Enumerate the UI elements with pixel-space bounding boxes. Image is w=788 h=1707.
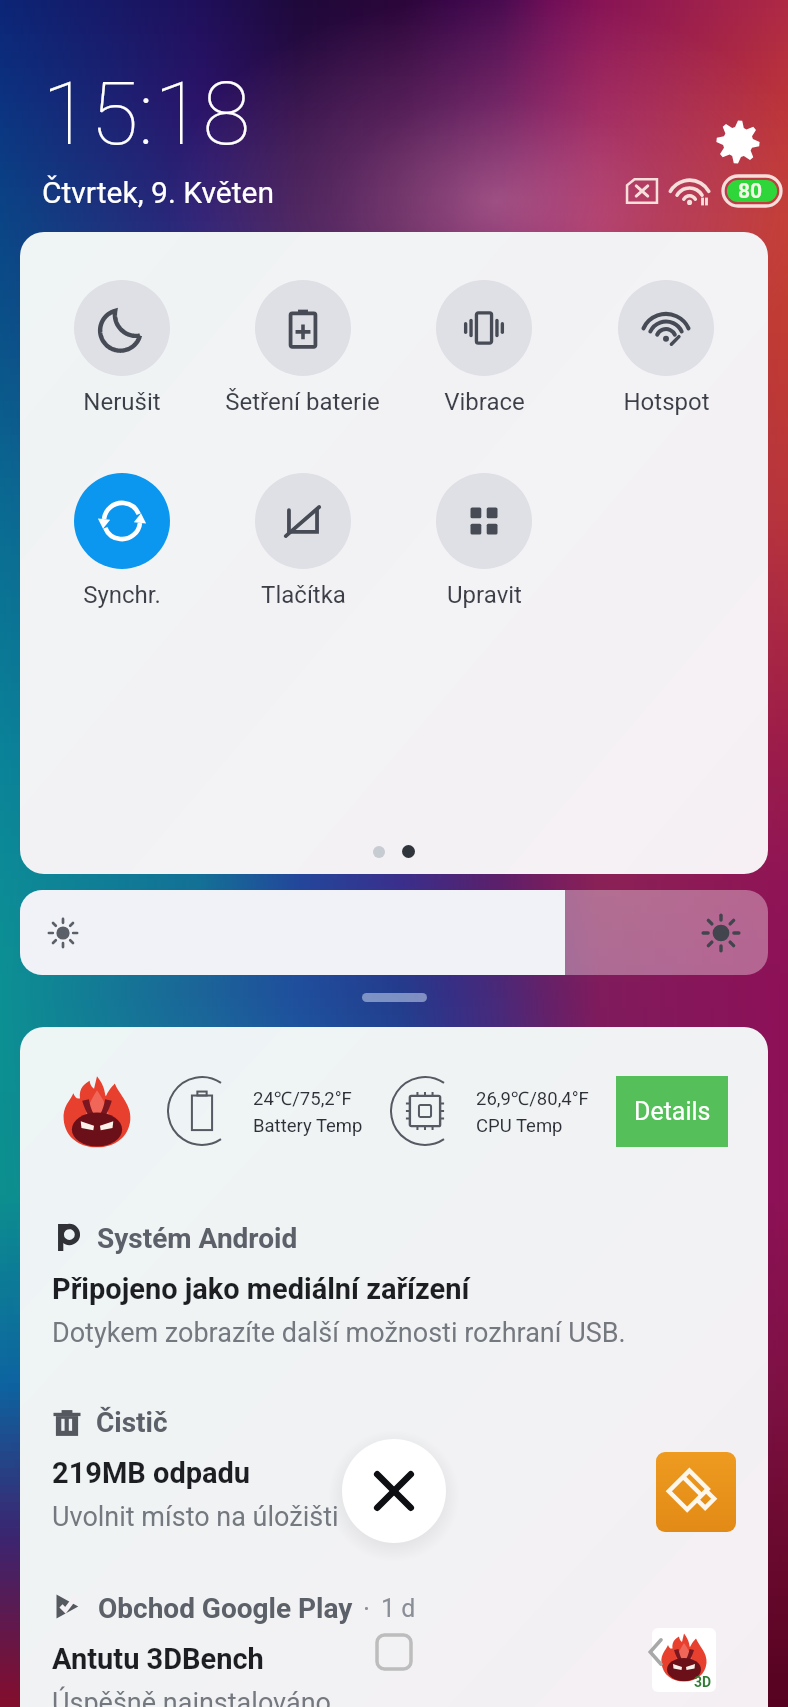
staticText: · <box>363 1593 371 1625</box>
staticText: Upravit <box>447 581 522 609</box>
staticText: Nerušit <box>83 388 161 416</box>
button[interactable] <box>255 280 351 376</box>
button[interactable]: Systém Android <box>20 1218 768 1357</box>
staticText: 15:18 <box>42 62 251 165</box>
button[interactable] <box>255 473 351 569</box>
button[interactable] <box>74 280 170 376</box>
button[interactable]: Back <box>525 1597 788 1707</box>
staticText: 80 <box>738 179 763 204</box>
staticText: Připojeno jako mediální zařízení <box>52 1272 470 1306</box>
staticText: 24℃/75,2°F <box>253 1085 352 1110</box>
staticText: 3D <box>694 1674 712 1690</box>
staticText: Systém Android <box>97 1222 298 1255</box>
button[interactable]: Close <box>342 1439 446 1543</box>
staticText: Battery Temp <box>253 1115 363 1137</box>
button[interactable]: Clean <box>656 1452 736 1532</box>
button[interactable]: 24℃/75,2°F <box>20 1027 768 1195</box>
staticText: 26,9℃/80,4°F <box>476 1085 589 1110</box>
staticText: 219MB odpadu <box>52 1456 251 1490</box>
staticText: Antutu 3DBench <box>52 1642 264 1676</box>
staticText: Vibrace <box>444 388 525 416</box>
button[interactable]: Home <box>262 1597 525 1707</box>
button[interactable]: Čistič <box>20 1400 768 1540</box>
staticText: Čistič <box>96 1406 168 1439</box>
button[interactable] <box>436 473 532 569</box>
staticText: Obchod Google Play <box>98 1592 353 1625</box>
button[interactable]: Details <box>616 1076 728 1147</box>
staticText: CPU Temp <box>476 1115 563 1137</box>
staticText: Hotspot <box>623 388 710 416</box>
button[interactable]: Obchod Google Play <box>20 1586 768 1707</box>
button[interactable]: Settings <box>710 114 766 170</box>
staticText: Čtvrtek, 9. Květen <box>42 175 275 210</box>
staticText: Synchr. <box>83 581 161 609</box>
staticText: Šetření baterie <box>225 388 380 416</box>
staticText: Úspěšně nainstalováno <box>52 1687 331 1707</box>
button[interactable] <box>74 473 170 569</box>
staticText: Tlačítka <box>261 581 346 609</box>
button[interactable] <box>436 280 532 376</box>
staticText: 1 d <box>381 1594 416 1623</box>
staticText: Details <box>634 1097 711 1126</box>
button[interactable] <box>20 890 768 975</box>
staticText: Uvolnit místo na úložišti <box>52 1501 339 1533</box>
button[interactable] <box>618 280 714 376</box>
staticText: Dotykem zobrazíte další možnosti rozhran… <box>52 1317 626 1349</box>
